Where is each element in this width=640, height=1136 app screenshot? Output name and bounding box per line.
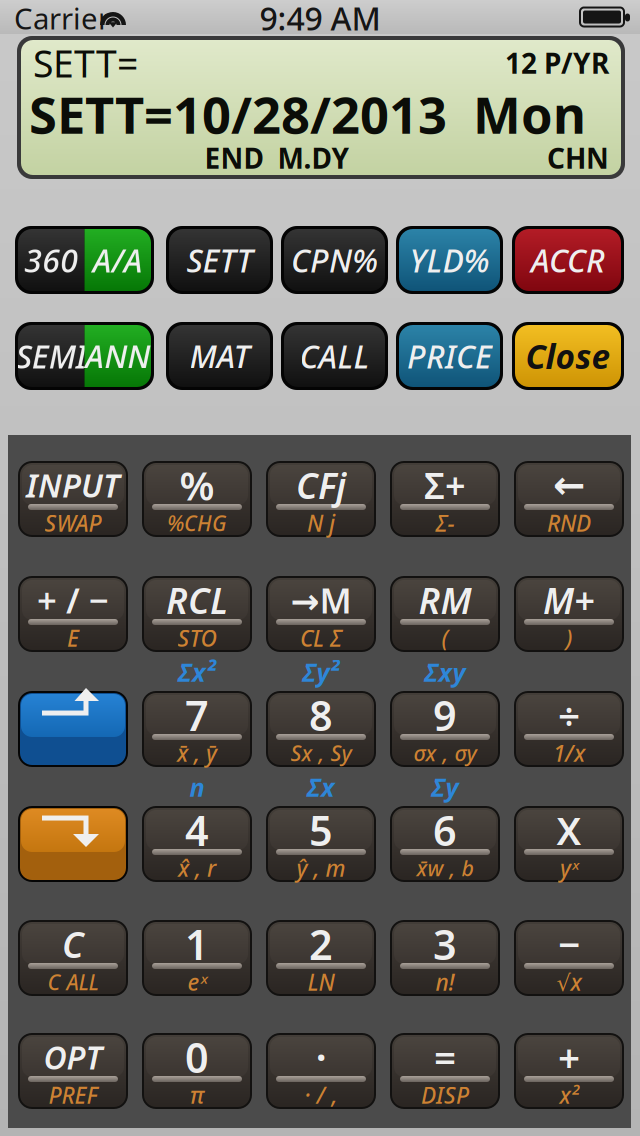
staticText: SETT= — [33, 38, 138, 88]
button[interactable]: Shift down — [18, 806, 128, 882]
staticText: 360 — [24, 239, 78, 281]
staticText: A/A — [93, 239, 143, 281]
button[interactable]: MAT — [166, 322, 273, 390]
staticText: Σ- — [435, 508, 454, 538]
staticText: 7 — [185, 688, 209, 742]
staticText: ← — [553, 463, 585, 507]
staticText: 0 — [185, 1030, 209, 1084]
staticText: Σx² — [178, 655, 216, 689]
button[interactable]: 7 — [142, 691, 252, 767]
button[interactable]: − — [514, 920, 624, 996]
button[interactable]: CALL — [281, 322, 388, 390]
button[interactable]: + — [514, 1033, 624, 1109]
staticText: 6 — [433, 803, 457, 857]
button[interactable]: 1 — [142, 920, 252, 996]
button[interactable]: 9 — [390, 691, 500, 767]
button[interactable]: CPN% — [281, 226, 388, 294]
button[interactable]: 5 — [266, 806, 376, 882]
staticText: + — [558, 1031, 580, 1083]
button[interactable]: 2 — [266, 920, 376, 996]
button[interactable]: Shift up — [18, 691, 128, 767]
staticText: LN — [307, 967, 334, 997]
staticText: σx , σy — [413, 739, 476, 767]
button[interactable]: % — [142, 461, 252, 537]
staticText: RM — [418, 576, 471, 624]
button[interactable]: ← — [514, 461, 624, 537]
button[interactable]: RCL — [142, 576, 252, 652]
staticText: ( — [441, 623, 448, 653]
staticText: C ALL — [47, 968, 98, 996]
staticText: Σxy — [424, 655, 465, 689]
staticText: RCL — [166, 576, 228, 624]
staticText: STO — [177, 623, 216, 653]
staticText: 2 — [309, 917, 333, 971]
staticText: SWAP — [44, 508, 101, 538]
staticText: SEMI — [16, 335, 87, 377]
staticText: Σ+ — [424, 461, 466, 509]
button[interactable]: · — [266, 1033, 376, 1109]
staticText: RND — [547, 508, 591, 538]
staticText: + / − — [37, 577, 109, 623]
staticText: SETT=10/28/2013 Mon — [29, 80, 586, 148]
staticText: 3 — [433, 917, 457, 971]
button[interactable]: Σ+ — [390, 461, 500, 537]
button[interactable]: 0 — [142, 1033, 252, 1109]
button[interactable]: M+ — [514, 576, 624, 652]
button[interactable]: RM — [390, 576, 500, 652]
staticText: √x — [556, 967, 581, 997]
button[interactable]: SETT — [166, 226, 273, 294]
button[interactable]: OPT — [18, 1033, 128, 1109]
staticText: N j — [307, 508, 335, 538]
button[interactable]: INPUT — [18, 461, 128, 537]
staticText: CALL — [299, 335, 369, 377]
button[interactable]: →M — [266, 576, 376, 652]
button[interactable]: C — [18, 920, 128, 996]
staticText: n — [189, 770, 204, 804]
button[interactable]: 360 — [15, 226, 154, 294]
button[interactable]: 3 — [390, 920, 500, 996]
button[interactable]: 8 — [266, 691, 376, 767]
button[interactable]: CFj — [266, 461, 376, 537]
staticText: 4 — [185, 803, 209, 857]
button[interactable]: ÷ — [514, 691, 624, 767]
button[interactable]: YLD% — [396, 226, 503, 294]
staticText: INPUT — [26, 464, 120, 506]
staticText: SETT — [186, 239, 252, 281]
button[interactable]: 6 — [390, 806, 500, 882]
staticText: n! — [435, 967, 454, 997]
staticText: x² — [559, 1080, 578, 1110]
staticText: C — [62, 920, 84, 968]
button[interactable]: SEMI — [15, 322, 154, 390]
staticText: →M — [290, 577, 351, 623]
staticText: %CHG — [167, 509, 227, 537]
staticText: CFj — [296, 461, 346, 509]
staticText: ÷ — [558, 689, 580, 741]
staticText: π — [190, 1080, 204, 1110]
button[interactable]: PRICE — [396, 322, 503, 390]
staticText: PRICE — [407, 335, 492, 377]
staticText: x̂ , r — [178, 853, 216, 883]
staticText: Carrier — [14, 0, 110, 37]
staticText: 5 — [309, 803, 333, 857]
staticText: OPT — [43, 1036, 102, 1078]
staticText: 8 — [309, 688, 333, 742]
button[interactable]: 4 — [142, 806, 252, 882]
staticText: · / , — [304, 1080, 337, 1110]
staticText: 1/x — [553, 738, 585, 768]
staticText: % — [179, 458, 214, 511]
staticText: Σy² — [302, 655, 339, 689]
staticText: CHN — [547, 139, 609, 177]
button[interactable]: Close — [512, 322, 624, 390]
button[interactable]: X — [514, 806, 624, 882]
staticText: Σx — [307, 770, 335, 804]
staticText: END M.DY — [204, 139, 349, 177]
button[interactable]: + / − — [18, 576, 128, 652]
button[interactable]: ACCR — [512, 226, 624, 294]
staticText: ŷ , m — [296, 853, 345, 883]
staticText: M+ — [543, 576, 595, 624]
staticText: 9:49 AM — [259, 0, 380, 39]
staticText: CL Σ — [300, 623, 342, 653]
staticText: 1 — [185, 917, 209, 971]
button[interactable]: = — [390, 1033, 500, 1109]
staticText: ANN — [85, 335, 150, 377]
